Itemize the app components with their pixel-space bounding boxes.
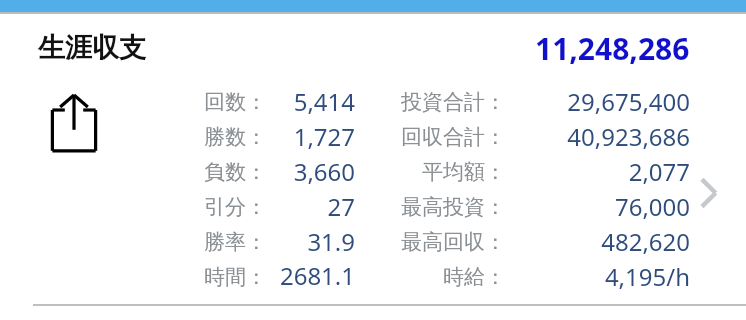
staticText: 27	[267, 190, 355, 223]
staticText: ：	[246, 194, 267, 220]
staticText: 負数	[150, 159, 246, 185]
other: Next	[698, 176, 720, 210]
staticText: 最高回収	[365, 229, 485, 255]
staticText: 勝数	[150, 124, 246, 150]
staticText: 2,077	[506, 155, 690, 188]
staticText: ：	[246, 89, 267, 115]
staticText: 482,620	[506, 225, 690, 258]
button[interactable]: Share	[51, 92, 97, 152]
staticText: 回収合計	[365, 124, 485, 150]
staticText: 3,660	[267, 155, 355, 188]
staticText: 40,923,686	[506, 120, 690, 153]
staticText: ：	[246, 229, 267, 255]
staticText: 1,727	[267, 120, 355, 153]
staticText: 29,675,400	[506, 85, 690, 118]
staticText: ：	[485, 229, 506, 255]
staticText: 31.9	[267, 225, 355, 258]
staticText: 引分	[150, 194, 246, 220]
staticText: 5,414	[267, 85, 355, 118]
staticText: 11,248,286	[535, 28, 690, 69]
staticText: 時間	[150, 264, 246, 290]
staticText: 回数	[150, 89, 246, 115]
staticText: ：	[246, 159, 267, 185]
staticText: ：	[246, 264, 267, 290]
staticText: 2681.1h	[267, 259, 355, 294]
staticText: 生涯収支	[38, 31, 146, 65]
staticText: ：	[485, 159, 506, 185]
staticText: 勝率	[150, 229, 246, 255]
staticText: 4,195/h	[506, 260, 690, 293]
staticText: 最高投資	[365, 194, 485, 220]
staticText: 時給	[365, 264, 485, 290]
staticText: 投資合計	[365, 89, 485, 115]
staticText: ：	[485, 264, 506, 290]
staticText: ：	[485, 194, 506, 220]
button[interactable]: 生涯収支	[0, 14, 746, 82]
staticText: ：	[485, 89, 506, 115]
staticText: 平均額	[365, 159, 485, 185]
staticText: ：	[246, 124, 267, 150]
staticText: ：	[485, 124, 506, 150]
staticText: 76,000	[506, 190, 690, 223]
button[interactable]: Share	[0, 82, 746, 304]
